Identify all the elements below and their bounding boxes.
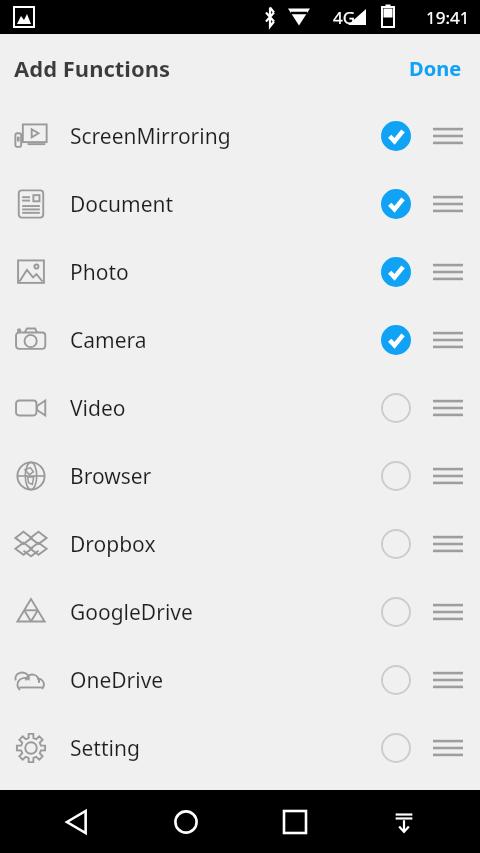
button[interactable]: ScreenMirroring — [0, 102, 480, 170]
button[interactable]: Setting — [0, 714, 480, 782]
button[interactable]: Reorder ScreenMirroring — [426, 114, 470, 158]
button[interactable]: Not selected — [372, 588, 420, 636]
button[interactable]: OneDrive — [0, 646, 480, 714]
button[interactable]: Reorder Setting — [426, 726, 470, 770]
staticText: Dropbox — [70, 530, 372, 559]
button[interactable]: Photo — [0, 238, 480, 306]
staticText: OneDrive — [70, 666, 372, 695]
button[interactable]: Selected — [372, 112, 420, 160]
staticText: Camera — [70, 326, 372, 355]
button[interactable]: Reorder Browser — [426, 454, 470, 498]
button[interactable]: Recent apps — [267, 794, 323, 850]
button[interactable]: Reorder OneDrive — [426, 658, 470, 702]
button[interactable]: GoogleDrive — [0, 578, 480, 646]
button[interactable]: Reorder Camera — [426, 318, 470, 362]
staticText: Photo — [70, 258, 372, 287]
staticText: GoogleDrive — [70, 598, 372, 627]
button[interactable]: Hide navigation bar — [376, 794, 432, 850]
button[interactable]: Browser — [0, 442, 480, 510]
button[interactable]: Reorder Dropbox — [426, 522, 470, 566]
button[interactable]: Video — [0, 374, 480, 442]
button[interactable]: Not selected — [372, 520, 420, 568]
staticText: Add Functions — [14, 53, 171, 83]
button[interactable]: Reorder Document — [426, 182, 470, 226]
button[interactable]: Dropbox — [0, 510, 480, 578]
button[interactable]: Reorder GoogleDrive — [426, 590, 470, 634]
button[interactable]: Home — [158, 794, 214, 850]
staticText: 19:41 — [426, 6, 470, 29]
staticText: Setting — [70, 734, 372, 763]
button[interactable]: Reorder Photo — [426, 250, 470, 294]
button[interactable]: Selected — [372, 180, 420, 228]
staticText: Done — [409, 55, 462, 82]
staticText: Document — [70, 190, 372, 219]
button[interactable]: Camera — [0, 306, 480, 374]
staticText: 4G — [333, 6, 356, 29]
button[interactable]: Done — [391, 45, 480, 92]
button[interactable]: Not selected — [372, 724, 420, 772]
button[interactable]: Back — [49, 794, 105, 850]
button[interactable]: Not selected — [372, 656, 420, 704]
button[interactable]: Selected — [372, 248, 420, 296]
staticText: ScreenMirroring — [70, 122, 372, 151]
button[interactable]: Reorder Video — [426, 386, 470, 430]
button[interactable]: Document — [0, 170, 480, 238]
staticText: Browser — [70, 462, 372, 491]
button[interactable]: Not selected — [372, 452, 420, 500]
staticText: Video — [70, 394, 372, 423]
button[interactable]: Selected — [372, 316, 420, 364]
button[interactable]: Not selected — [372, 384, 420, 432]
